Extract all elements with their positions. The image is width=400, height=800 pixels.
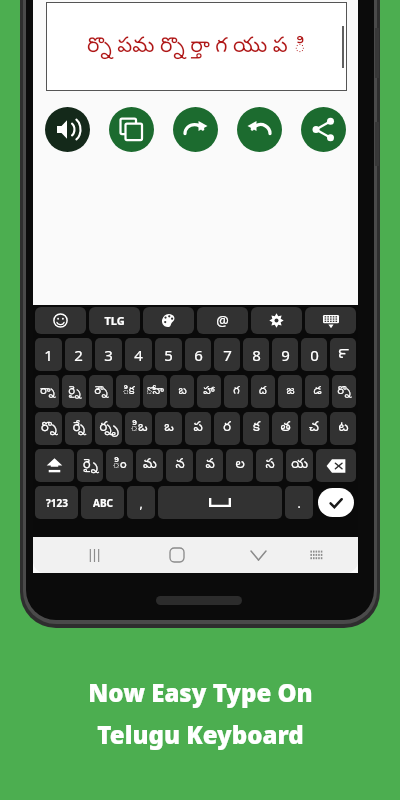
button[interactable]: ల <box>226 449 253 482</box>
staticText: వ <box>205 457 215 475</box>
staticText: క <box>253 420 260 438</box>
staticText: ర్నా <box>40 384 55 399</box>
staticText: Now Easy Type On <box>88 676 313 709</box>
button[interactable]: చ <box>301 412 327 445</box>
button[interactable]: ద <box>251 375 275 408</box>
button[interactable]: న <box>166 449 193 482</box>
button[interactable]: Toolbar key <box>251 307 302 334</box>
button[interactable]: 1 <box>35 338 62 371</box>
button[interactable]: ర్నే <box>65 412 92 445</box>
button[interactable]: ర్నా <box>35 375 59 408</box>
staticText: ిం <box>112 457 127 475</box>
button[interactable]: Redo <box>173 107 218 152</box>
button[interactable]: ర్నై <box>62 375 86 408</box>
button[interactable]: Undo <box>237 107 282 152</box>
button[interactable]: ర్నౌ <box>89 375 113 408</box>
button[interactable]: 3 <box>95 338 122 371</box>
button[interactable]: ?123 <box>35 486 78 519</box>
staticText: ఒ <box>164 420 174 438</box>
staticText: 2 <box>74 345 83 365</box>
button[interactable]: ర్నొ <box>35 412 62 445</box>
staticText: ABC <box>93 496 113 510</box>
button[interactable]: హా <box>197 375 221 408</box>
button[interactable]: య <box>286 449 313 482</box>
staticText: 3 <box>104 345 113 365</box>
button[interactable]: ోనా <box>143 375 167 408</box>
staticText: స <box>265 457 275 475</box>
button[interactable]: Share <box>301 107 346 152</box>
button[interactable]: 4 <box>125 338 152 371</box>
button[interactable]: బ <box>170 375 194 408</box>
button[interactable]: ర్నై <box>77 449 103 482</box>
button[interactable]: 9 <box>272 338 298 371</box>
button[interactable]: స <box>256 449 283 482</box>
staticText: త <box>280 420 291 438</box>
staticText: ల <box>235 457 245 475</box>
button[interactable]: 5 <box>155 338 182 371</box>
button[interactable] <box>316 449 356 482</box>
button[interactable]: ిం <box>106 449 133 482</box>
button[interactable]: . <box>285 486 313 519</box>
button[interactable]: , <box>127 486 155 519</box>
button[interactable]: Toolbar key <box>143 307 194 334</box>
staticText: గ <box>233 384 240 399</box>
staticText: ర్నొ పమ ర్నొ ర్తా గ యు ప ి <box>87 30 306 63</box>
button[interactable]: Switch keyboard <box>295 537 338 573</box>
staticText: ర్నే <box>73 420 85 438</box>
button[interactable]: 8 <box>243 338 269 371</box>
button[interactable]: ర్నొ <box>332 375 356 408</box>
staticText: ర్నొ <box>41 420 57 438</box>
button[interactable]: Copy <box>109 107 154 152</box>
button[interactable]: మ <box>136 449 163 482</box>
staticText: ర్నై <box>68 384 81 399</box>
button[interactable]: ర్నొ పమ ర్నొ ర్తా గ యు ప ి <box>47 3 346 90</box>
button[interactable]: 0 <box>301 338 327 371</box>
button[interactable]: 6 <box>185 338 211 371</box>
staticText: ోనా <box>146 384 164 399</box>
staticText: జ <box>286 384 295 399</box>
button[interactable]: ABC <box>81 486 124 519</box>
button[interactable]: 2 <box>65 338 92 371</box>
staticText: ర్నై <box>83 457 98 475</box>
button[interactable]: ౯ <box>330 338 356 371</box>
button[interactable]: Enter <box>318 488 354 517</box>
staticText: , <box>139 495 143 511</box>
staticText: ిఒ <box>130 420 148 438</box>
staticText: ర్నృ <box>99 420 119 438</box>
button[interactable]: Speak <box>45 107 90 152</box>
button[interactable]: ఒ <box>155 412 182 445</box>
button[interactable]: ిక <box>116 375 140 408</box>
button[interactable] <box>158 486 282 519</box>
button[interactable]: Toolbar key <box>197 307 248 334</box>
staticText: ిక <box>122 384 135 399</box>
button[interactable]: త <box>272 412 298 445</box>
staticText: . <box>297 495 301 511</box>
staticText: ర్నౌ <box>94 384 108 399</box>
button[interactable]: క <box>243 412 269 445</box>
button[interactable]: ప <box>185 412 211 445</box>
button[interactable]: Recents <box>73 537 116 573</box>
staticText: ట <box>338 420 349 438</box>
staticText: న <box>175 457 185 475</box>
button[interactable]: Toolbar key <box>305 307 356 334</box>
staticText: ద <box>259 384 267 399</box>
staticText: 9 <box>281 345 290 365</box>
button[interactable]: Home <box>155 537 198 573</box>
button[interactable]: ట <box>330 412 356 445</box>
button[interactable]: డ <box>305 375 329 408</box>
staticText: మ <box>143 457 157 475</box>
staticText: య <box>291 457 308 475</box>
button[interactable]: ర్నృ <box>95 412 122 445</box>
button[interactable]: వ <box>196 449 223 482</box>
button[interactable] <box>35 449 74 482</box>
button[interactable]: ర <box>214 412 240 445</box>
button[interactable]: జ <box>278 375 302 408</box>
button[interactable]: ిఒ <box>125 412 152 445</box>
staticText: బ <box>178 384 187 399</box>
button[interactable]: Hide keyboard <box>237 537 280 573</box>
button[interactable]: 7 <box>214 338 240 371</box>
button[interactable]: Toolbar key <box>35 307 86 334</box>
button[interactable]: గ <box>224 375 248 408</box>
button[interactable]: Toolbar key <box>89 307 140 334</box>
staticText: ర్నొ <box>337 384 351 399</box>
